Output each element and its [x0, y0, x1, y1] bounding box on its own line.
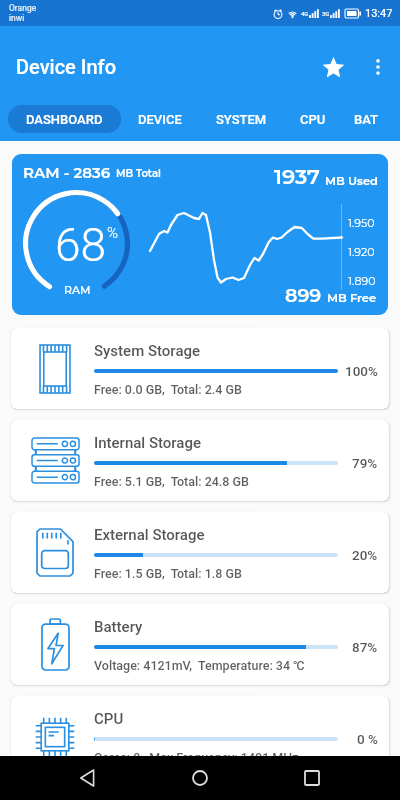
staticText: 79%: [352, 455, 378, 471]
staticText: External Storage: [94, 526, 205, 544]
staticText: 100%: [345, 363, 378, 379]
staticText: 4G: [301, 10, 309, 17]
staticText: 1.950: [348, 216, 375, 229]
staticText: CPU: [94, 710, 124, 728]
button[interactable]: SYSTEM: [199, 105, 284, 133]
button[interactable]: Battery: [11, 604, 389, 685]
staticText: inwi: [9, 13, 25, 23]
staticText: CPU: [300, 112, 326, 127]
staticText: MB Free: [327, 291, 377, 305]
staticText: Free: 1.5 GB, Total: 1.8 GB: [94, 566, 242, 581]
button[interactable]: Recent apps: [288, 756, 336, 800]
staticText: 87%: [352, 639, 378, 655]
staticText: System Storage: [94, 342, 201, 360]
button[interactable]: BAT: [342, 105, 390, 133]
staticText: Free: 5.1 GB, Total: 24.8 GB: [94, 474, 249, 489]
button[interactable]: CPU: [11, 696, 389, 777]
button[interactable]: Internal Storage: [11, 420, 389, 501]
button[interactable]: Back: [64, 756, 112, 800]
staticText: 0 %: [357, 731, 378, 747]
staticText: %: [107, 224, 119, 242]
staticText: 3G: [322, 10, 330, 17]
staticText: Free: 0.0 GB, Total: 2.4 GB: [94, 382, 242, 397]
button[interactable]: DEVICE: [121, 105, 199, 133]
staticText: Internal Storage: [94, 434, 202, 452]
staticText: DASHBOARD: [26, 112, 103, 127]
button[interactable]: System Storage: [11, 328, 389, 409]
button[interactable]: External Storage: [11, 512, 389, 593]
staticText: 20%: [352, 547, 378, 563]
staticText: RAM - 2836: [23, 163, 111, 181]
staticText: SYSTEM: [216, 112, 267, 127]
staticText: 1.890: [348, 274, 376, 287]
staticText: 13:47: [365, 7, 393, 20]
staticText: 1.920: [348, 245, 375, 258]
staticText: MB Used: [325, 174, 378, 188]
staticText: DEVICE: [138, 112, 182, 127]
staticText: Battery: [94, 618, 143, 636]
button[interactable]: More options: [356, 45, 400, 89]
staticText: 899: [285, 284, 322, 307]
button[interactable]: DASHBOARD: [8, 105, 121, 133]
staticText: Orange: [9, 3, 37, 13]
staticText: Cores: 8, Max Frequency: 1401 MHz: [94, 750, 299, 765]
staticText: BAT: [354, 112, 378, 127]
staticText: RAM: [64, 283, 91, 296]
staticText: 68: [55, 218, 107, 272]
button[interactable]: Home: [176, 756, 224, 800]
button[interactable]: Favorite: [310, 44, 356, 90]
button[interactable]: RAM - 2836: [12, 154, 388, 315]
staticText: Device Info: [16, 55, 116, 78]
staticText: 1937: [274, 164, 320, 190]
staticText: MB Total: [116, 167, 161, 179]
button[interactable]: CPU: [284, 105, 342, 133]
staticText: Voltage: 4121mV, Temperature: 34 ℃: [94, 658, 305, 673]
